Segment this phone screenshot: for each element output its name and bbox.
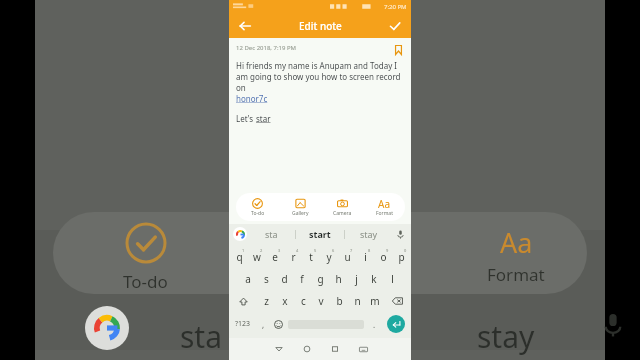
staticText: g: [317, 272, 324, 286]
staticText: s: [264, 272, 269, 286]
button[interactable]: Back: [264, 338, 293, 360]
button[interactable]: Backspace: [384, 290, 410, 312]
button[interactable]: Enter: [387, 315, 405, 333]
button[interactable]: Gallery: [279, 193, 321, 221]
button[interactable]: Aa: [363, 193, 405, 221]
button[interactable]: 1: [230, 246, 248, 268]
staticText: 3: [278, 248, 281, 253]
staticText: o: [380, 250, 387, 264]
button[interactable]: 4: [284, 246, 302, 268]
button[interactable]: x: [276, 290, 294, 312]
button[interactable]: Back: [235, 16, 255, 36]
button[interactable]: Emoji: [270, 312, 286, 336]
staticText: sta: [180, 316, 223, 357]
staticText: m: [370, 294, 380, 308]
button[interactable]: To-do: [236, 193, 279, 221]
button[interactable]: b: [330, 290, 348, 312]
staticText: .: [373, 319, 376, 330]
button[interactable]: ,: [256, 312, 270, 336]
button[interactable]: n: [348, 290, 366, 312]
staticText: r: [291, 250, 296, 264]
button[interactable]: 8: [356, 246, 374, 268]
staticText: ?123: [235, 319, 251, 329]
button[interactable]: .: [366, 312, 382, 336]
staticText: 12 Dec 2018, 7:19 PM: [236, 44, 297, 52]
staticText: f: [300, 272, 304, 286]
button[interactable]: 0: [392, 246, 410, 268]
staticText: ,: [262, 319, 265, 330]
staticText: Edit note: [299, 19, 342, 33]
button[interactable]: Voice input: [393, 227, 407, 241]
button[interactable]: g: [311, 268, 329, 290]
staticText: p: [398, 250, 405, 264]
button[interactable]: 9: [374, 246, 392, 268]
button[interactable]: j: [347, 268, 365, 290]
staticText: d: [281, 272, 288, 286]
button[interactable]: a: [239, 268, 257, 290]
button[interactable]: 2: [248, 246, 266, 268]
button[interactable]: Camera: [321, 193, 363, 221]
staticText: 7:20 PM: [384, 3, 407, 11]
staticText: h: [335, 272, 342, 286]
button[interactable]: stay: [345, 224, 393, 244]
button[interactable]: Back: [229, 13, 411, 38]
staticText: t: [309, 250, 313, 264]
staticText: 1: [242, 248, 245, 253]
button[interactable]: sta: [247, 224, 295, 244]
staticText: star: [256, 113, 271, 124]
staticText: y: [326, 250, 332, 264]
button[interactable]: start: [296, 224, 344, 244]
button[interactable]: Hide keyboard: [349, 338, 377, 360]
button[interactable]: v: [312, 290, 330, 312]
staticText: sta: [265, 228, 278, 240]
button[interactable]: Recents: [321, 338, 349, 360]
staticText: stay: [477, 316, 535, 357]
button[interactable]: 6: [320, 246, 338, 268]
button[interactable]: s: [257, 268, 275, 290]
staticText: e: [272, 250, 278, 264]
staticText: 7: [350, 248, 353, 253]
button[interactable]: 7: [338, 246, 356, 268]
button[interactable]: l: [383, 268, 401, 290]
button[interactable]: m: [366, 290, 384, 312]
button[interactable]: Bookmark: [392, 44, 404, 56]
staticText: honor7c: [236, 93, 268, 104]
staticText: l: [391, 272, 394, 286]
button[interactable]: 5: [302, 246, 320, 268]
staticText: start: [309, 228, 331, 240]
button[interactable]: h: [329, 268, 347, 290]
staticText: stay: [360, 228, 378, 240]
button[interactable]: d: [275, 268, 293, 290]
staticText: a: [245, 272, 251, 286]
staticText: w: [253, 250, 261, 264]
staticText: Aa: [378, 197, 390, 209]
staticText: Format: [376, 210, 393, 217]
button[interactable]: 3: [266, 246, 284, 268]
button[interactable]: Shift: [230, 290, 257, 312]
button[interactable]: Save note: [385, 16, 405, 36]
staticText: 0: [404, 248, 407, 253]
staticText: Format: [487, 263, 545, 286]
staticText: n: [354, 294, 361, 308]
staticText: j: [355, 272, 358, 286]
button[interactable]: c: [294, 290, 312, 312]
button[interactable]: f: [293, 268, 311, 290]
staticText: z: [264, 294, 269, 308]
staticText: 2: [260, 248, 263, 253]
button[interactable]: Home: [293, 338, 321, 360]
staticText: b: [336, 294, 343, 308]
staticText: To-do: [251, 210, 265, 217]
staticText: k: [371, 272, 377, 286]
staticText: q: [236, 250, 243, 264]
staticText: 4: [296, 248, 299, 253]
button[interactable]: ?123: [230, 312, 256, 336]
staticText: Camera: [333, 210, 352, 217]
button[interactable]: k: [365, 268, 383, 290]
button[interactable]: Google search: [233, 227, 247, 241]
staticText: To-do: [123, 270, 168, 293]
staticText: Aa: [500, 224, 533, 261]
staticText: Hi friends my name is Anupam and Today I…: [236, 60, 404, 93]
staticText: Gallery: [292, 210, 309, 217]
button[interactable]: z: [257, 290, 276, 312]
